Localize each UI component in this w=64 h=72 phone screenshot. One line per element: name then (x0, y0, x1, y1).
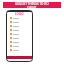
staticText: AUGUST THINGS TO DO (15, 2, 49, 6)
button[interactable]: AUGUST THINGS TO DO (3, 2, 61, 8)
staticText: EVENT (27, 6, 37, 8)
staticText: LOGO (15, 12, 24, 16)
